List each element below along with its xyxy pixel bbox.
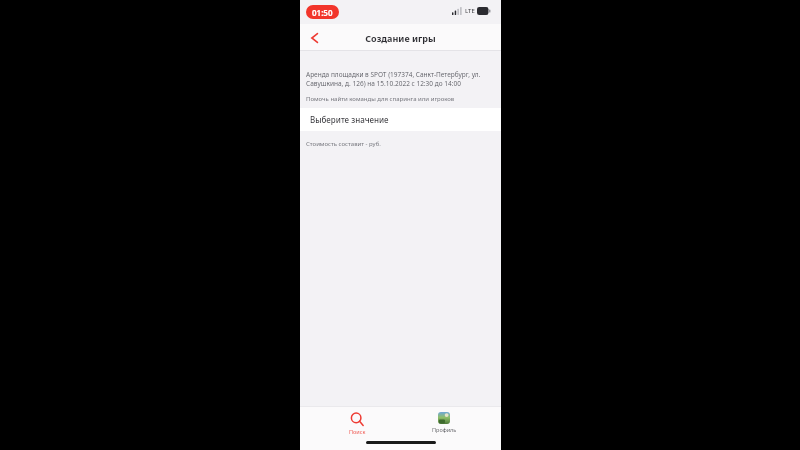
button[interactable]: Профиль xyxy=(414,410,474,435)
staticText: Стоимость составит - руб. xyxy=(306,140,495,148)
staticText: Создание игры xyxy=(365,32,436,44)
staticText: Аренда площадки в SPOT (197374, Санкт-Пе… xyxy=(306,70,495,88)
staticText: Выберите значение xyxy=(310,114,389,125)
staticText: Помочь найти команды для спаринга или иг… xyxy=(306,95,495,103)
staticText: LTE xyxy=(465,7,475,15)
staticText: Поиск xyxy=(349,428,366,435)
button[interactable]: Назад xyxy=(303,27,325,49)
button[interactable]: Выберите значение xyxy=(300,108,501,131)
staticText: Профиль xyxy=(432,426,457,433)
button[interactable]: Поиск xyxy=(327,410,387,437)
staticText: 01:50 xyxy=(312,7,333,18)
